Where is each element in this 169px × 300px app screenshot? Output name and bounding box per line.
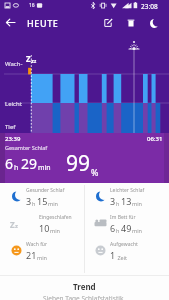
staticText: Z xyxy=(26,53,31,64)
staticText: min xyxy=(50,227,60,234)
staticText: 23:08 xyxy=(141,2,158,11)
staticText: Im Bett für xyxy=(110,214,136,221)
staticText: min xyxy=(38,163,51,173)
staticText: Eingeschlafen xyxy=(39,214,72,221)
button[interactable]: Aufgewacht xyxy=(84,237,169,264)
staticText: Sieben Tage Schlafstatistik. xyxy=(43,294,126,300)
staticText: Gesamter Schlaf xyxy=(5,144,48,151)
staticText: Aufgewacht xyxy=(110,241,138,248)
staticText: Leichter Schlaf xyxy=(110,187,145,194)
staticText: 6 xyxy=(110,222,116,234)
staticText: HEUTE xyxy=(27,17,59,29)
staticText: 1 xyxy=(110,249,116,261)
staticText: h xyxy=(32,200,37,207)
staticText: 06:31 xyxy=(147,135,163,143)
staticText: z xyxy=(15,222,18,230)
staticText: z xyxy=(31,57,34,65)
staticText: 49 xyxy=(121,222,132,234)
staticText: Z xyxy=(10,219,15,230)
staticText: 23:39 xyxy=(5,135,21,143)
staticText: min xyxy=(37,254,47,261)
button[interactable]: Z xyxy=(0,210,84,237)
staticText: h xyxy=(14,163,21,173)
staticText: min xyxy=(48,200,58,207)
staticText: h xyxy=(116,200,121,207)
staticText: h xyxy=(116,227,121,234)
button[interactable]: Delete xyxy=(121,13,141,33)
staticText: 13 xyxy=(121,195,132,207)
staticText: Zeit xyxy=(116,254,128,261)
staticText: % xyxy=(91,166,99,178)
staticText: Leicht xyxy=(5,100,22,108)
staticText: min xyxy=(132,227,142,234)
button[interactable]: Leichter Schlaf xyxy=(84,183,169,210)
staticText: 6 xyxy=(5,154,14,173)
staticText: 3 xyxy=(26,195,32,207)
button[interactable]: Edit xyxy=(98,13,118,33)
staticText: Wach- xyxy=(5,60,23,68)
staticText: Tief xyxy=(5,123,16,131)
staticText: 99 xyxy=(66,149,91,178)
button[interactable]: Wach für xyxy=(0,237,84,264)
button[interactable]: Gesunder Schlaf xyxy=(0,183,84,210)
staticText: 3 xyxy=(110,195,116,207)
staticText: 21 xyxy=(26,249,37,261)
staticText: 29 xyxy=(21,154,38,173)
staticText: 10 xyxy=(39,222,50,234)
staticText: 16 xyxy=(29,2,35,9)
button[interactable]: Night mode xyxy=(144,13,164,33)
staticText: Gesunder Schlaf xyxy=(26,187,65,194)
button[interactable]: Back xyxy=(0,12,21,33)
staticText: z xyxy=(34,58,37,64)
staticText: min xyxy=(132,200,142,207)
staticText: 15 xyxy=(37,195,48,207)
button[interactable]: Im Bett für xyxy=(84,210,169,237)
staticText: Wach für xyxy=(26,241,48,248)
staticText: Trend xyxy=(73,281,96,292)
